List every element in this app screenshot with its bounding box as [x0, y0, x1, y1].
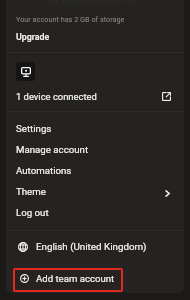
- button[interactable]: Theme: [6, 181, 184, 202]
- button[interactable]: [6, 53, 184, 111]
- button[interactable]: Settings: [6, 118, 184, 139]
- button[interactable]: Log out: [6, 202, 184, 223]
- staticText: Your account has 2 GB of storage: [16, 15, 125, 24]
- staticText: 1 device connected: [16, 91, 97, 102]
- staticText: Upgrade: [16, 32, 50, 42]
- staticText: Manage account: [16, 144, 89, 155]
- staticText: Add team account: [36, 273, 115, 284]
- staticText: Theme: [16, 186, 46, 197]
- button[interactable]: Automations: [6, 160, 184, 181]
- button[interactable]: [6, 236, 184, 257]
- staticText: Settings: [16, 123, 52, 134]
- staticText: Log out: [16, 207, 49, 218]
- staticText: English (United Kingdom): [36, 241, 147, 252]
- other: Open device list: [162, 92, 171, 101]
- button[interactable]: [13, 268, 123, 292]
- staticText: Automations: [16, 165, 72, 176]
- button[interactable]: Manage account: [6, 139, 184, 160]
- button[interactable]: [6, 8, 184, 51]
